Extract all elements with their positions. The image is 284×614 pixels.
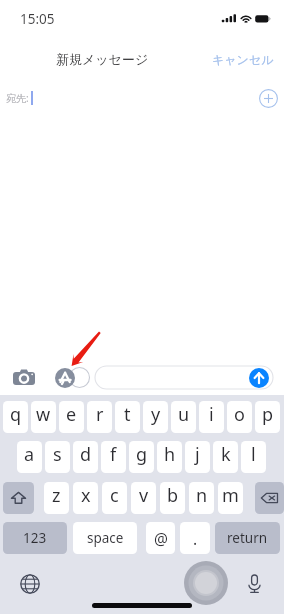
staticText: e xyxy=(66,402,77,427)
staticText: g xyxy=(136,442,148,467)
staticText: r xyxy=(96,402,104,427)
button[interactable] xyxy=(255,482,284,514)
staticText: l xyxy=(251,442,256,467)
staticText: d xyxy=(80,442,92,467)
button[interactable]: Home xyxy=(184,561,228,605)
staticText: v xyxy=(139,483,149,508)
button[interactable]: h xyxy=(157,441,182,473)
staticText: t xyxy=(124,402,131,427)
staticText: s xyxy=(53,442,62,467)
button[interactable]: y xyxy=(143,401,168,433)
button[interactable] xyxy=(95,366,273,389)
staticText: f xyxy=(110,442,117,467)
staticText: x xyxy=(81,483,91,508)
button[interactable]: Send xyxy=(249,368,269,388)
staticText: i xyxy=(209,402,214,427)
staticText: return xyxy=(227,529,268,547)
button[interactable]: i xyxy=(199,401,224,433)
button[interactable]: Camera xyxy=(13,369,35,385)
button[interactable]: s xyxy=(45,441,70,473)
button[interactable]: a xyxy=(17,441,42,473)
staticText: a xyxy=(24,442,35,467)
staticText: z xyxy=(52,483,61,508)
staticText: b xyxy=(167,483,179,508)
button[interactable]: Add contact xyxy=(259,89,278,108)
button[interactable]: t xyxy=(115,401,140,433)
button[interactable]: 123 xyxy=(3,522,67,554)
staticText: k xyxy=(221,442,231,467)
button[interactable]: x xyxy=(73,482,98,514)
button[interactable]: e xyxy=(59,401,84,433)
staticText: j xyxy=(195,442,200,467)
staticText: space xyxy=(87,529,124,547)
button[interactable]: k xyxy=(213,441,238,473)
staticText: m xyxy=(222,483,239,508)
button[interactable]: n xyxy=(189,482,214,514)
button[interactable]: return xyxy=(215,522,280,554)
button[interactable]: r xyxy=(87,401,112,433)
staticText: y xyxy=(151,402,161,427)
button[interactable]: App Store xyxy=(55,368,75,388)
button[interactable]: . xyxy=(180,522,210,554)
button[interactable]: o xyxy=(227,401,252,433)
staticText: q xyxy=(10,402,22,427)
button[interactable] xyxy=(3,482,34,514)
staticText: . xyxy=(193,528,198,549)
button[interactable]: g xyxy=(129,441,154,473)
button[interactable]: z xyxy=(44,482,69,514)
staticText: o xyxy=(234,402,245,427)
staticText: h xyxy=(164,442,176,467)
button[interactable]: Switch keyboard xyxy=(20,574,40,594)
button[interactable]: Dictation xyxy=(246,574,263,594)
staticText: 新規メッセージ xyxy=(56,51,149,67)
staticText: 123 xyxy=(23,529,47,547)
button[interactable]: キャンセル xyxy=(202,48,284,71)
staticText: 宛先: xyxy=(6,91,29,105)
staticText: c xyxy=(110,483,119,508)
button[interactable]: p xyxy=(255,401,280,433)
staticText: キャンセル xyxy=(212,52,274,67)
button[interactable]: c xyxy=(102,482,127,514)
button[interactable]: w xyxy=(31,401,56,433)
staticText: w xyxy=(36,402,51,427)
staticText: 15:05 xyxy=(20,10,55,28)
button[interactable]: v xyxy=(131,482,156,514)
staticText: @ xyxy=(154,528,168,549)
button[interactable]: b xyxy=(160,482,185,514)
button[interactable]: d xyxy=(73,441,98,473)
staticText: p xyxy=(262,402,274,427)
button[interactable]: q xyxy=(3,401,28,433)
button[interactable]: j xyxy=(185,441,210,473)
button[interactable]: u xyxy=(171,401,196,433)
button[interactable]: space xyxy=(73,522,137,554)
button[interactable]: f xyxy=(101,441,126,473)
button[interactable]: m xyxy=(218,482,243,514)
staticText: n xyxy=(196,483,208,508)
button[interactable]: l xyxy=(241,441,266,473)
staticText: u xyxy=(178,402,190,427)
button[interactable]: @ xyxy=(146,522,175,554)
